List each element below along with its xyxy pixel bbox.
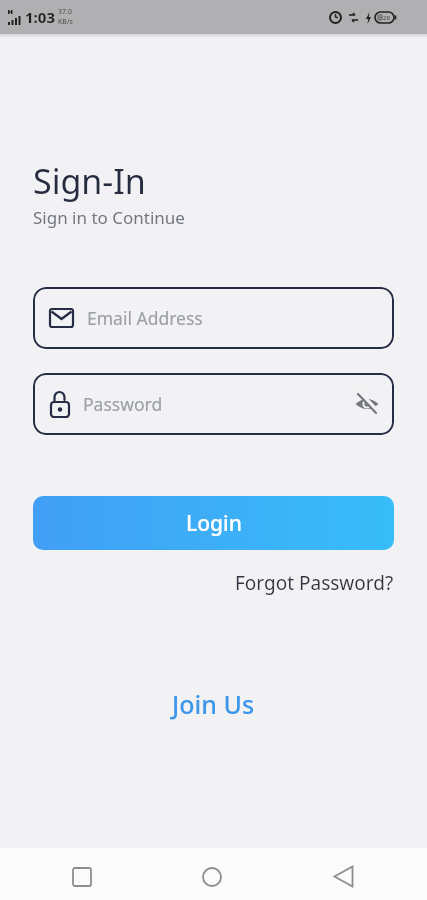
staticText: KB/s: [58, 17, 73, 27]
staticText: Join Us: [172, 687, 255, 721]
button[interactable]: [202, 867, 222, 887]
staticText: Forgot Password?: [235, 570, 394, 596]
button[interactable]: Join Us: [172, 687, 255, 721]
button[interactable]: Forgot Password?: [235, 570, 394, 596]
button[interactable]: [73, 868, 91, 886]
button[interactable]: Login: [33, 496, 394, 550]
staticText: Sign in to Continue: [33, 206, 185, 229]
staticText: 1:03: [25, 7, 55, 27]
staticText: Password: [83, 392, 163, 416]
staticText: 37.0: [58, 7, 72, 17]
staticText: 28: [383, 14, 390, 22]
staticText: Login: [186, 509, 242, 538]
staticText: Email Address: [87, 306, 203, 330]
button[interactable]: Password: [33, 373, 394, 435]
staticText: Sign-In: [33, 158, 146, 204]
button[interactable]: [333, 865, 354, 888]
button[interactable]: Email Address: [33, 287, 394, 349]
